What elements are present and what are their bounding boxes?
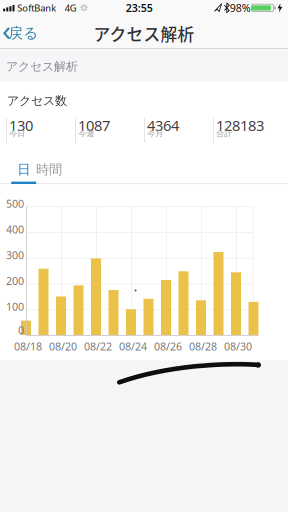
staticText: 1087 [78,116,110,135]
staticText: 4G [65,2,77,14]
staticText: 08/18 [14,339,42,353]
staticText: 08/26 [154,339,182,353]
staticText: 08/24 [119,339,147,353]
staticText: SoftBank [17,2,56,14]
button[interactable]: 時間 [34,158,64,180]
staticText: 日 [17,161,30,178]
staticText: 0 [18,323,24,337]
staticText: 今日 [9,129,25,138]
staticText: 100 [6,299,24,314]
staticText: 500 [6,197,24,211]
staticText: 08/28 [189,339,217,353]
staticText: 08/22 [84,339,112,353]
staticText: 戻る [8,24,38,42]
staticText: 08/30 [224,339,252,353]
staticText: 時間 [36,161,62,178]
staticText: 128183 [216,116,264,135]
button[interactable]: 日 [11,158,37,180]
staticText: 4364 [147,116,179,135]
button[interactable]: 戻る [0,15,40,48]
staticText: 今週 [78,129,94,138]
staticText: 今月 [147,129,163,138]
staticText: アクセス解析 [6,59,78,74]
staticText: アクセス数 [7,93,67,108]
staticText: 08/20 [49,339,77,353]
staticText: 23:55 [126,1,153,15]
staticText: 130 [9,116,33,135]
staticText: 300 [6,248,24,262]
staticText: 合計 [216,129,232,138]
staticText: 200 [6,274,24,288]
staticText: 400 [6,222,24,236]
staticText: アクセス解析 [93,21,194,45]
staticText: 98% [230,1,251,15]
